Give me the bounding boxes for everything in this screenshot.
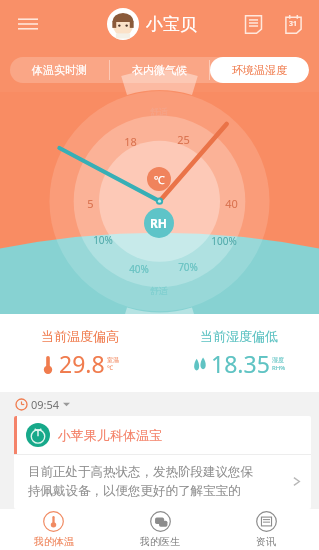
button[interactable]: Calendar (273, 4, 313, 44)
staticText: 体温实时测 (32, 63, 87, 77)
staticText: 室温 (107, 356, 119, 364)
staticText: RH% (272, 364, 286, 372)
staticText: 5 (87, 196, 94, 211)
staticText: 舒适 (150, 285, 168, 296)
button[interactable]: 当前湿度偏低 (159, 314, 319, 392)
staticText: RH (150, 215, 168, 231)
button[interactable]: 我的医生 (107, 509, 213, 550)
button[interactable]: 小苹果儿科体温宝 (14, 416, 311, 509)
button[interactable]: 衣内微气候 (110, 57, 209, 83)
staticText: ℃ (154, 172, 165, 187)
staticText: ℃ (107, 364, 113, 372)
button[interactable]: Notes (233, 4, 273, 44)
staticText: 40 (225, 196, 238, 211)
staticText: 09:54 (31, 397, 60, 412)
button[interactable]: 环境温湿度 (210, 57, 309, 83)
staticText: 环境温湿度 (232, 63, 287, 77)
staticText: 小宝贝 (146, 14, 197, 35)
button[interactable]: 09:54 (16, 397, 70, 412)
staticText: 18.35 (211, 348, 270, 379)
button[interactable]: 体温实时测 (10, 57, 109, 83)
staticText: 资讯 (256, 535, 276, 548)
button[interactable]: Profile (107, 8, 139, 40)
staticText: 舒适 (150, 106, 168, 117)
staticText: 当前湿度偏低 (200, 328, 278, 344)
staticText: 40% (129, 262, 149, 276)
staticText: 100% (211, 234, 237, 248)
staticText: 湿度 (272, 356, 284, 364)
staticText: 10% (93, 233, 113, 247)
staticText: 29.8 (59, 348, 105, 379)
staticText: 70% (178, 260, 198, 274)
button[interactable]: 当前温度偏高 (0, 314, 159, 392)
staticText: 小苹果儿科体温宝 (58, 427, 162, 443)
staticText: 我的体温 (34, 535, 74, 548)
staticText: 25 (177, 132, 190, 147)
button[interactable]: 我的体温 (0, 509, 107, 550)
button[interactable]: Menu (8, 4, 48, 44)
button[interactable]: 资讯 (213, 509, 319, 550)
staticText: 当前温度偏高 (41, 328, 119, 344)
staticText: 我的医生 (140, 535, 180, 548)
staticText: 目前正处于高热状态，发热阶段建议您保 持佩戴设备，以便您更好的了解宝宝的 (28, 464, 290, 499)
staticText: 31 (289, 19, 298, 29)
staticText: 18 (124, 134, 137, 149)
staticText: 衣内微气候 (132, 63, 187, 77)
